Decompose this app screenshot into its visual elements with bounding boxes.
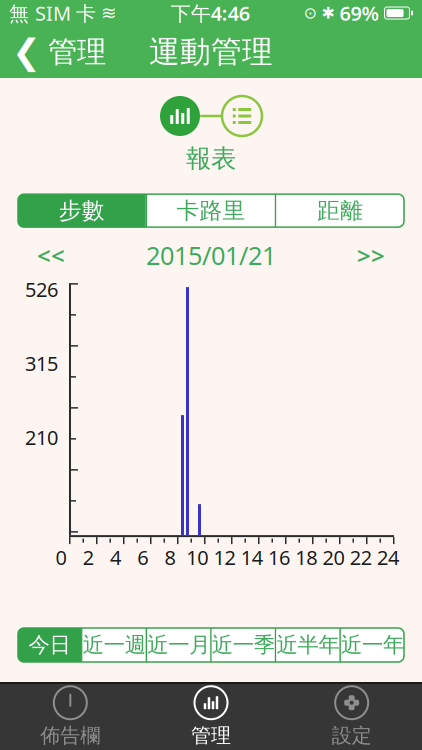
staticText: 步數 [59,197,105,224]
button[interactable]: << [18,239,84,271]
staticText: 210 [25,424,58,450]
staticText: 運動管理 [149,33,273,71]
button[interactable]: 步數 [18,194,146,227]
staticText: 4 [110,544,121,570]
staticText: 近一週 [83,632,146,658]
button[interactable]: 今日 [18,628,81,662]
staticText: 69% [339,0,379,26]
staticText: 設定 [332,723,372,748]
staticText: 卡路里 [176,197,245,224]
staticText: 315 [25,350,58,376]
staticText: 2015/01/21 [146,238,276,272]
button[interactable]: 設定 [281,684,422,750]
staticText: 下午4:46 [171,0,250,26]
staticText: ❮ [12,32,41,72]
staticText: 18 [295,544,317,570]
staticText: 報表 [186,143,236,174]
staticText: 管理 [48,34,106,70]
staticText: 24 [377,544,399,570]
staticText: << [37,239,65,271]
button[interactable]: 管理 [141,684,281,750]
staticText: 16 [268,544,290,570]
staticText: 無 SIM 卡 [9,0,96,26]
button[interactable]: ❮ [0,26,116,78]
staticText: ✱ [321,4,334,22]
staticText: 距離 [317,197,363,224]
staticText: >> [357,239,385,271]
staticText: 14 [241,544,263,570]
staticText: 20 [322,544,344,570]
staticText: 0 [55,544,66,570]
button[interactable]: 近一年 [341,628,404,662]
staticText: 2 [83,544,94,570]
staticText: 近一月 [147,632,210,658]
staticText: 管理 [191,723,231,748]
button[interactable]: 近半年 [276,628,339,662]
button[interactable]: 佈告欄 [0,684,141,750]
staticText: 12 [213,544,235,570]
staticText: 佈告欄 [40,723,100,748]
staticText: ≋ [101,2,117,24]
staticText: 近半年 [276,632,339,658]
staticText: ⊙ [303,4,316,22]
button[interactable]: 近一週 [83,628,146,662]
staticText: 22 [350,544,372,570]
button[interactable]: 距離 [276,194,404,227]
button[interactable]: 近一季 [212,628,275,662]
staticText: 近一季 [212,632,275,658]
staticText: 8 [164,544,175,570]
button[interactable]: >> [338,239,404,271]
staticText: 6 [137,544,148,570]
staticText: 10 [186,544,208,570]
staticText: 近一年 [341,632,404,658]
button[interactable]: 近一月 [147,628,210,662]
staticText: 今日 [28,632,70,658]
button[interactable]: 卡路里 [147,194,275,227]
staticText: 526 [25,276,58,302]
